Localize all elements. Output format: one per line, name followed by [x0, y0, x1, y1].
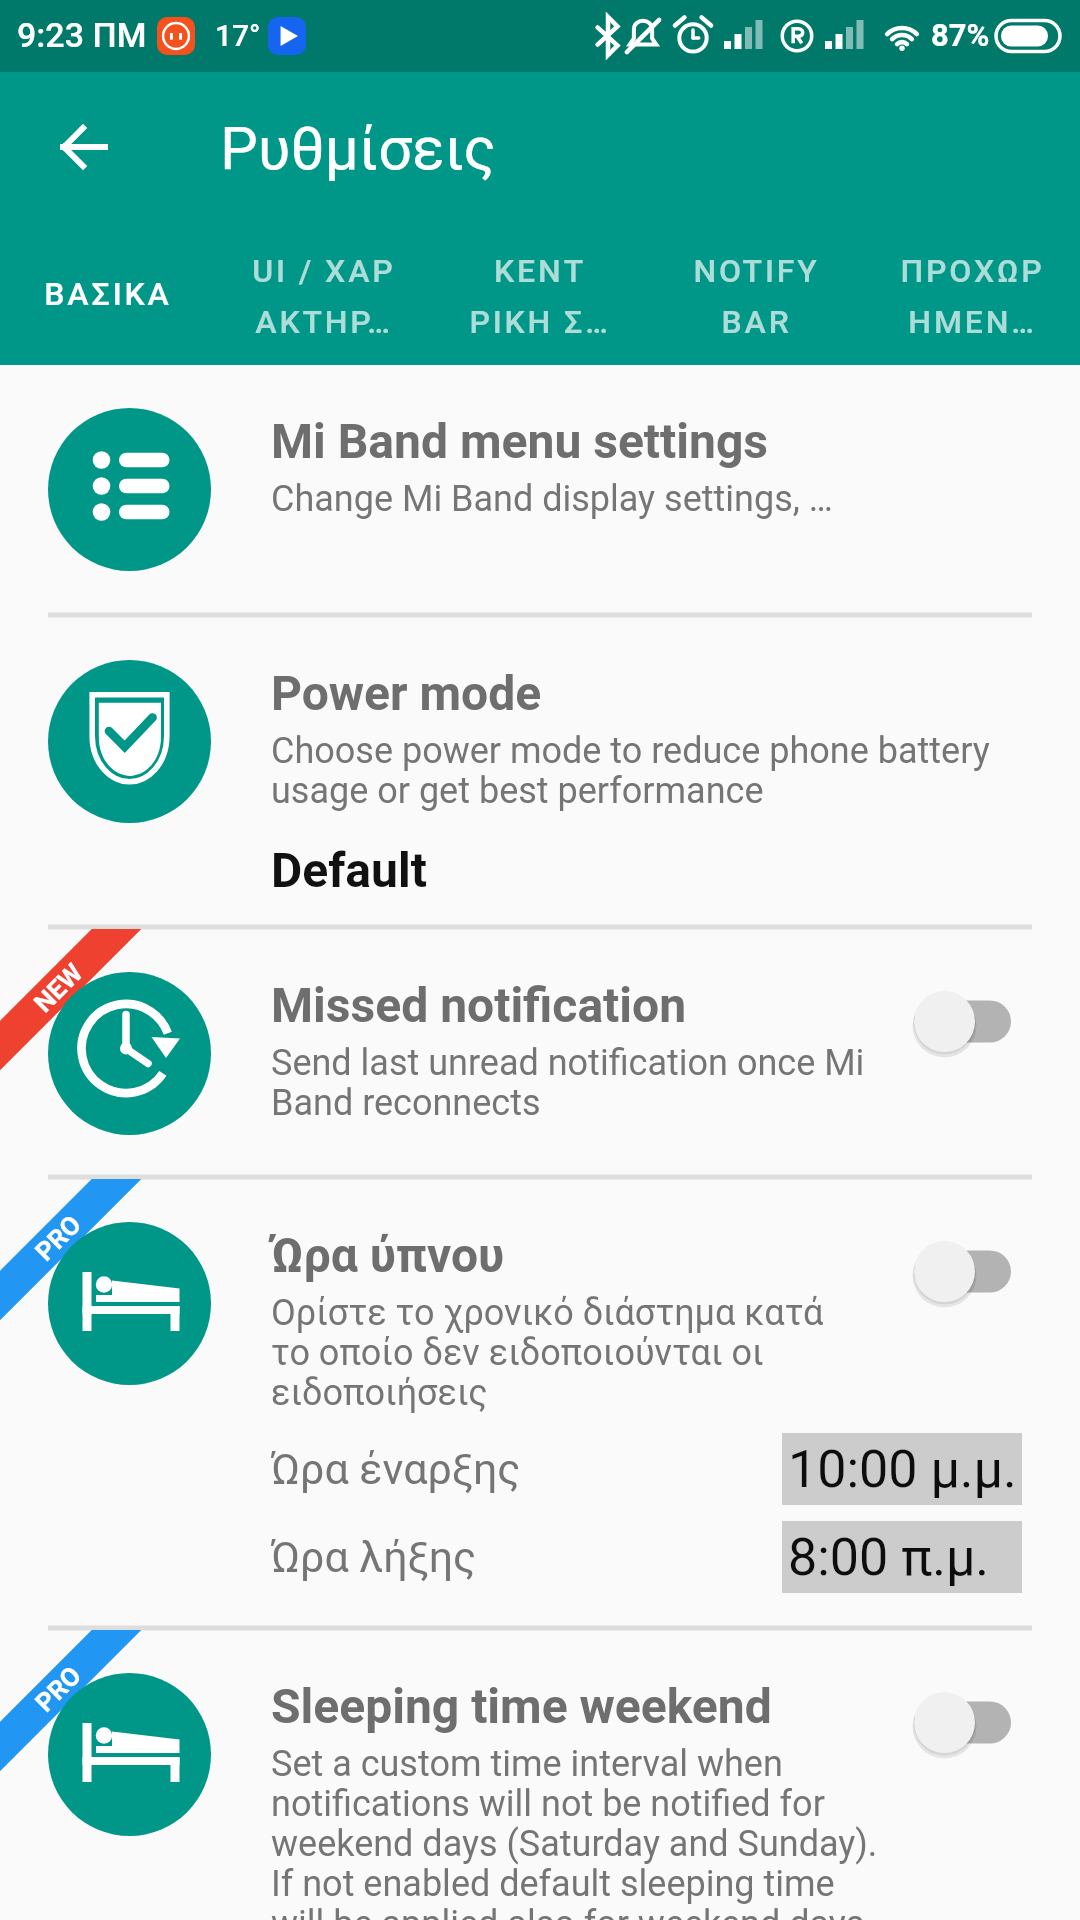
button[interactable]: ΚΕΝΤ ΡΙΚΗ Σ… — [432, 221, 648, 365]
staticText: 10:00 μ.μ. — [788, 1439, 1017, 1500]
button[interactable]: ΒΑΣΙΚΑ — [0, 221, 216, 365]
button[interactable]: PRO — [0, 1179, 1080, 1627]
staticText: PRO — [29, 1660, 87, 1718]
staticText: NEW — [28, 957, 89, 1018]
button[interactable]: Ώρα λήξης — [271, 1513, 1022, 1601]
button[interactable]: NOTIFY BAR — [648, 221, 864, 365]
staticText: Choose power mode to reduce phone batter… — [271, 731, 990, 811]
staticText: ΒΑΣΙΚΑ — [44, 265, 172, 316]
staticText: Ώρα ύπνου — [271, 1228, 505, 1284]
staticText: Ορίστε το χρονικό διάστημα κατά το οποίο… — [271, 1293, 824, 1413]
button[interactable]: ΠΡΟΧΩΡ ΗΜΕΝ… — [864, 221, 1080, 365]
button[interactable]: Toggle — [914, 1241, 1016, 1302]
button[interactable]: Ώρα έναρξης — [271, 1425, 1022, 1513]
staticText: Sleeping time weekend — [271, 1679, 772, 1735]
staticText: 17° — [215, 18, 261, 53]
staticText: ΠΡΟΧΩΡ ΗΜΕΝ… — [900, 242, 1045, 344]
staticText: Change Mi Band display settings, … — [271, 479, 833, 519]
button[interactable]: PRO — [0, 1630, 1080, 1920]
staticText: Send last unread notification once Mi Ba… — [271, 1043, 865, 1123]
staticText: Ώρα έναρξης — [271, 1444, 521, 1494]
button[interactable]: NEW — [0, 929, 1080, 1176]
staticText: Ρυθμίσεις — [220, 113, 496, 183]
button[interactable]: Mi Band menu settings — [0, 365, 1080, 614]
button[interactable]: UI / ΧΑΡ ΑΚΤΗΡ… — [216, 221, 432, 365]
staticText: PRO — [29, 1209, 87, 1267]
staticText: Default — [271, 843, 427, 899]
button[interactable]: Toggle — [914, 1692, 1016, 1753]
staticText: UI / ΧΑΡ ΑΚΤΗΡ… — [252, 242, 396, 344]
staticText: 8:00 π.μ. — [788, 1527, 990, 1588]
staticText: 87% — [931, 17, 990, 53]
staticText: 9:23 ΠΜ — [17, 15, 147, 55]
staticText: Ώρα λήξης — [271, 1532, 477, 1582]
button[interactable]: Power mode — [0, 617, 1080, 926]
staticText: Set a custom time interval when notifica… — [271, 1744, 878, 1920]
staticText: Missed notification — [271, 978, 687, 1034]
staticText: ΚΕΝΤ ΡΙΚΗ Σ… — [469, 242, 611, 344]
staticText: NOTIFY BAR — [693, 242, 820, 344]
button[interactable]: Back — [24, 87, 144, 207]
staticText: Mi Band menu settings — [271, 414, 769, 470]
button[interactable]: Toggle — [914, 991, 1016, 1052]
staticText: Power mode — [271, 666, 542, 722]
